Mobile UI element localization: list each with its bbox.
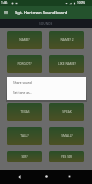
staticText: SMALL?: [61, 134, 73, 138]
button[interactable]: Open navigation drawer: [0, 6, 12, 19]
button[interactable]: NAME?: [7, 31, 42, 49]
button[interactable]: YES SIR: [49, 151, 84, 162]
button[interactable]: Back: [13, 170, 26, 183]
button[interactable]: NAME? 2: [49, 31, 84, 49]
staticText: FORGOT?: [17, 62, 32, 66]
button[interactable]: Recent apps: [63, 170, 76, 183]
staticText: 1:46: [1, 1, 8, 5]
staticText: Sgt. Hartman Soundboard: [15, 10, 68, 16]
button[interactable]: SIR?: [7, 151, 42, 162]
staticText: NAME? 2: [60, 38, 74, 42]
button[interactable]: SPEAK: [49, 103, 84, 121]
staticText: SPEAK: [62, 110, 72, 114]
staticText: NAME?: [19, 38, 30, 42]
staticText: Set tone as...: [13, 91, 33, 95]
button[interactable]: SMALL?: [49, 127, 84, 145]
staticText: SOUNDS: [39, 22, 53, 26]
button[interactable]: Set tone as...: [7, 88, 86, 98]
button[interactable]: FORGOT?: [7, 55, 42, 73]
button[interactable]: TEXAS: [7, 103, 42, 121]
staticText: SIR?: [21, 155, 28, 159]
staticText: LIKE NAME?: [58, 62, 76, 66]
button[interactable]: Home: [40, 170, 53, 183]
staticText: TEXAS: [20, 110, 30, 114]
button[interactable]: BORN?: [7, 79, 42, 97]
staticText: YES SIR: [61, 155, 72, 159]
staticText: 100%: [77, 1, 86, 5]
button[interactable]: LIKE NAME?: [49, 55, 84, 73]
button[interactable]: Share sound: [7, 78, 86, 88]
staticText: TALL?: [20, 134, 29, 138]
staticText: Share sound: [13, 81, 32, 85]
button[interactable]: TALL?: [7, 127, 42, 145]
